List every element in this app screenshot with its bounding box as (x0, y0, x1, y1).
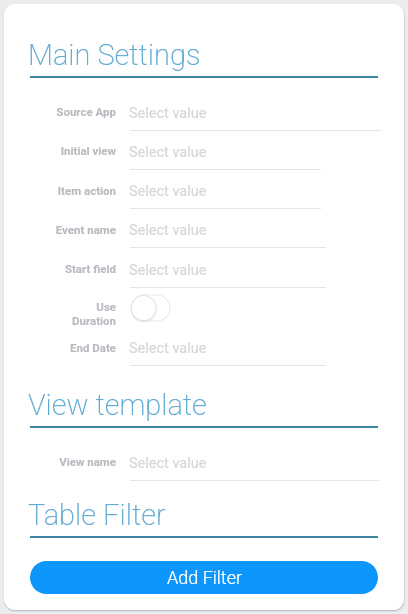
staticText: Select value (129, 144, 207, 161)
staticText: Item action (22, 184, 116, 197)
staticText: Select value (129, 105, 207, 122)
staticText: Select value (129, 262, 207, 279)
staticText: Event name (22, 223, 116, 236)
staticText: End Date (22, 341, 116, 354)
staticText: Initial view (22, 144, 116, 157)
staticText: Source App (22, 105, 116, 118)
staticText: Select value (129, 455, 207, 472)
staticText: Use Duration (22, 300, 116, 328)
staticText: View name (22, 455, 116, 468)
button[interactable]: Use Duration toggle (130, 294, 172, 322)
staticText: Table Filter (28, 498, 166, 532)
staticText: Main Settings (28, 38, 201, 72)
staticText: Select value (129, 222, 207, 239)
staticText: Select value (129, 340, 207, 357)
staticText: Start field (22, 262, 116, 275)
staticText: Select value (129, 183, 207, 200)
staticText: View template (28, 388, 207, 422)
button[interactable]: Add Filter (30, 561, 378, 594)
staticText: Add Filter (167, 567, 242, 588)
